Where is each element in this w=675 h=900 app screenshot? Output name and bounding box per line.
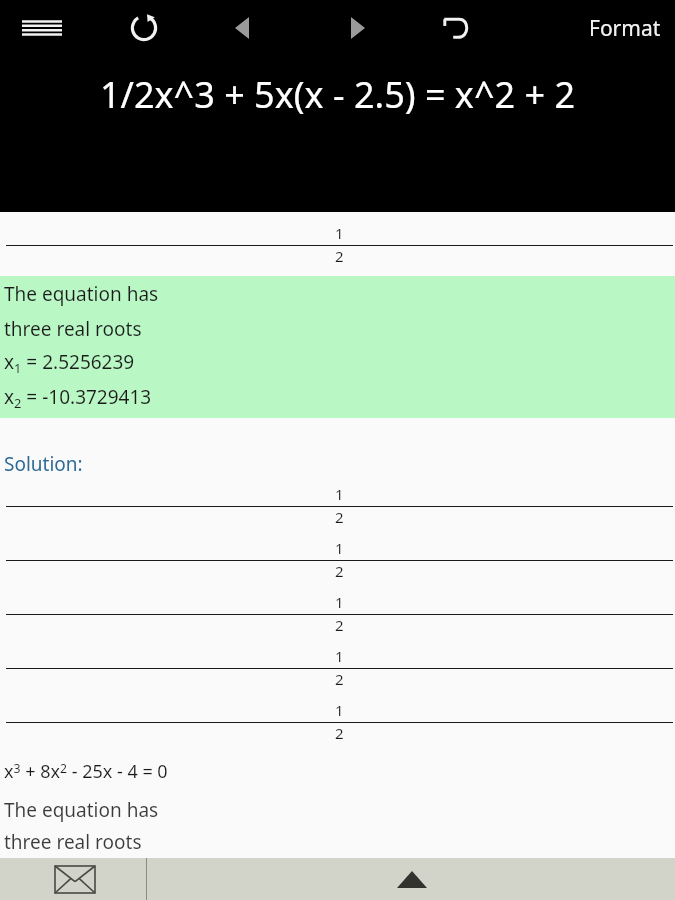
staticText: 1 (335, 484, 344, 504)
staticText: The equation has (4, 797, 159, 823)
staticText: 1 (335, 538, 344, 558)
staticText: 1 (335, 592, 344, 612)
staticText: three real roots (4, 829, 142, 855)
staticText: 2 (335, 246, 344, 266)
staticText: 2 (335, 669, 344, 689)
button[interactable]: Undo (428, 0, 484, 56)
staticText: 1 (335, 646, 344, 666)
staticText: x3 + 8x2 - 25x - 4 = 0 (4, 759, 168, 784)
button[interactable]: Format (575, 0, 675, 56)
staticText: x2 = -10.3729413 (4, 384, 152, 412)
staticText: The equation has (4, 281, 159, 307)
staticText: 1 (335, 223, 344, 243)
button[interactable]: Previous (214, 0, 270, 56)
button[interactable]: Next (330, 0, 386, 56)
button[interactable]: Menu (12, 0, 72, 56)
staticText: 1/2x^3 + 5x(x - 2.5) = x^2 + 2 (100, 70, 575, 119)
staticText: 2 (335, 507, 344, 527)
staticText: 2 (335, 561, 344, 581)
staticText: 2 (335, 615, 344, 635)
button[interactable]: Scroll up (382, 858, 442, 900)
staticText: Format (589, 14, 661, 43)
staticText: x1 = 2.5256239 (4, 349, 135, 377)
button[interactable]: Send by email (30, 858, 120, 900)
button[interactable]: Recalculate (116, 0, 172, 56)
staticText: 1 (335, 700, 344, 720)
staticText: three real roots (4, 316, 142, 342)
staticText: Solution: (4, 451, 83, 477)
staticText: 2 (335, 723, 344, 743)
